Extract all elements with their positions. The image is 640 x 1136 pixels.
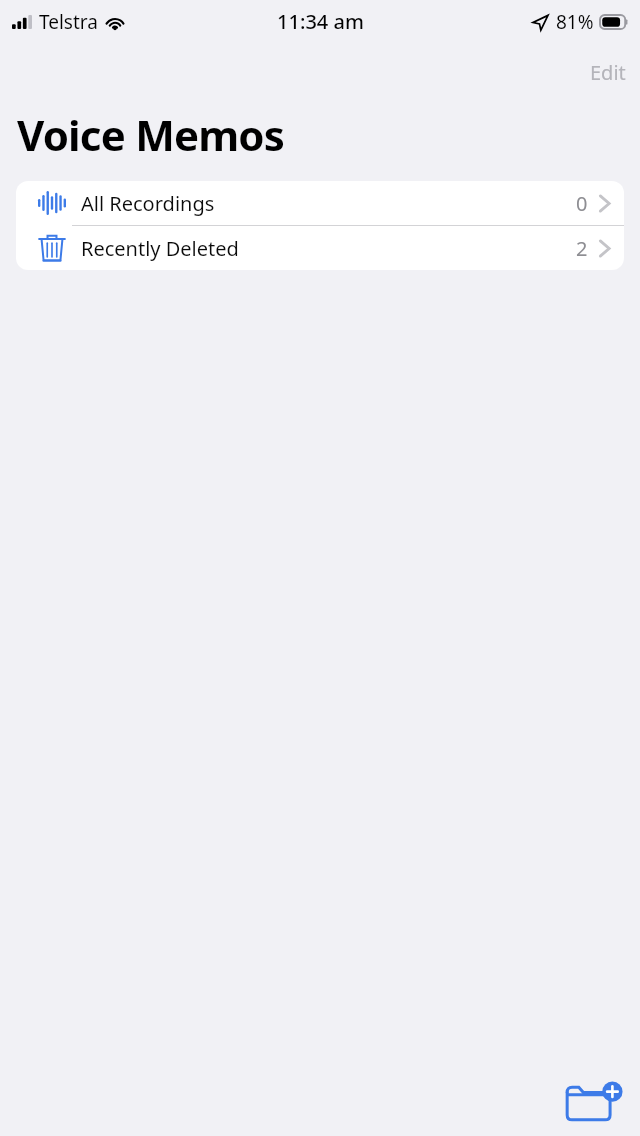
button[interactable]: All Recordings — [16, 181, 624, 225]
staticText: 2 — [576, 235, 588, 262]
staticText: 11:34 am — [277, 8, 364, 35]
staticText: All Recordings — [81, 190, 215, 217]
button[interactable]: New Folder — [550, 1074, 640, 1134]
button[interactable]: Recently Deleted — [16, 226, 624, 270]
staticText: Edit — [590, 59, 626, 86]
staticText: Recently Deleted — [81, 235, 239, 262]
staticText: Telstra — [39, 9, 98, 35]
staticText: 0 — [576, 190, 588, 217]
staticText: 81% — [556, 9, 594, 35]
staticText: Voice Memos — [17, 106, 285, 163]
button[interactable]: Edit — [576, 53, 640, 92]
